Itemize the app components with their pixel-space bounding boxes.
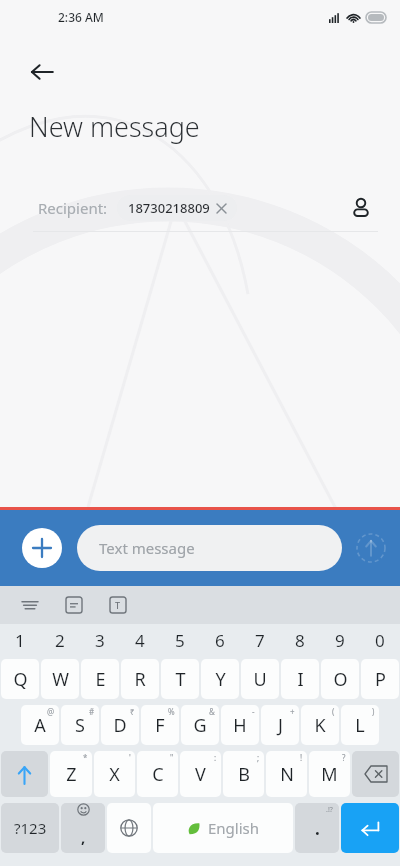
staticText: L bbox=[355, 713, 365, 738]
staticText: ) bbox=[372, 706, 375, 717]
button[interactable]: English bbox=[153, 803, 293, 853]
button[interactable]: T bbox=[161, 659, 199, 699]
button[interactable]: O bbox=[321, 659, 359, 699]
button[interactable]: E bbox=[81, 659, 119, 699]
button[interactable]: L bbox=[341, 705, 379, 745]
staticText: ! bbox=[300, 752, 303, 763]
button[interactable]: 1 bbox=[0, 624, 40, 656]
button[interactable]: P bbox=[361, 659, 399, 699]
button[interactable]: J bbox=[261, 705, 299, 745]
button[interactable]: Enter bbox=[341, 803, 399, 853]
staticText: U bbox=[253, 667, 267, 692]
staticText: T bbox=[115, 599, 121, 611]
staticText: , bbox=[81, 827, 86, 847]
staticText: + bbox=[290, 706, 295, 717]
staticText: T bbox=[175, 667, 186, 692]
button[interactable]: 7 bbox=[240, 624, 280, 656]
staticText: .!? bbox=[326, 805, 333, 815]
staticText: S bbox=[75, 713, 85, 738]
button[interactable]: K bbox=[301, 705, 339, 745]
button[interactable]: Y bbox=[201, 659, 239, 699]
button[interactable]: Back bbox=[20, 50, 64, 94]
button[interactable]: 18730218809 bbox=[117, 195, 237, 221]
button[interactable]: 8 bbox=[280, 624, 320, 656]
button[interactable]: G bbox=[181, 705, 219, 745]
staticText: 2 bbox=[55, 629, 65, 652]
button[interactable]: N bbox=[266, 751, 307, 797]
button[interactable]: Contacts bbox=[342, 189, 380, 227]
button[interactable]: Text message bbox=[77, 525, 342, 571]
button[interactable]: Clipboard bbox=[58, 589, 90, 621]
staticText: ₹ bbox=[130, 706, 135, 717]
staticText: K bbox=[314, 713, 326, 738]
staticText: : bbox=[214, 752, 217, 763]
staticText: Text message bbox=[99, 538, 195, 558]
button[interactable]: 5 bbox=[160, 624, 200, 656]
staticText: 7 bbox=[255, 629, 265, 652]
staticText: Q bbox=[13, 667, 28, 692]
staticText: 1 bbox=[15, 629, 25, 652]
staticText: & bbox=[209, 706, 215, 717]
staticText: H bbox=[233, 713, 247, 738]
button[interactable]: 3 bbox=[80, 624, 120, 656]
staticText: Y bbox=[215, 667, 226, 692]
staticText: ; bbox=[257, 752, 260, 763]
staticText: Recipient: bbox=[38, 198, 108, 218]
staticText: # bbox=[89, 706, 95, 717]
button[interactable]: V bbox=[180, 751, 221, 797]
button[interactable]: Change language bbox=[107, 803, 151, 853]
button[interactable]: ?123 bbox=[1, 803, 59, 853]
button[interactable]: W bbox=[41, 659, 79, 699]
staticText: O bbox=[333, 667, 348, 692]
button[interactable]: Backspace bbox=[352, 751, 399, 797]
button[interactable]: I bbox=[281, 659, 319, 699]
staticText: P bbox=[375, 667, 386, 692]
staticText: * bbox=[83, 752, 88, 763]
button[interactable]: Send bbox=[342, 519, 400, 577]
staticText: @ bbox=[47, 706, 55, 717]
button[interactable]: M bbox=[309, 751, 350, 797]
button[interactable]: R bbox=[121, 659, 159, 699]
staticText: D bbox=[113, 713, 127, 738]
staticText: G bbox=[193, 713, 207, 738]
button[interactable]: U bbox=[241, 659, 279, 699]
staticText: Z bbox=[66, 762, 77, 787]
staticText: M bbox=[321, 762, 338, 787]
button[interactable]: 6 bbox=[200, 624, 240, 656]
button[interactable]: Menu bbox=[14, 589, 46, 621]
staticText: . bbox=[315, 817, 320, 840]
button[interactable]: 2 bbox=[40, 624, 80, 656]
staticText: - bbox=[252, 706, 255, 717]
button[interactable]: F bbox=[141, 705, 179, 745]
staticText: " bbox=[170, 752, 174, 763]
staticText: 3 bbox=[95, 629, 105, 652]
button[interactable]: Text format bbox=[102, 589, 134, 621]
staticText: W bbox=[52, 667, 69, 692]
button[interactable]: Emoji bbox=[61, 803, 105, 853]
staticText: V bbox=[195, 762, 206, 787]
button[interactable]: A bbox=[21, 705, 59, 745]
staticText: 8 bbox=[295, 629, 305, 652]
staticText: New message bbox=[29, 108, 200, 145]
staticText: ' bbox=[129, 752, 131, 763]
button[interactable]: 4 bbox=[120, 624, 160, 656]
button[interactable]: Z bbox=[50, 751, 92, 797]
button[interactable]: B bbox=[223, 751, 264, 797]
staticText: 4 bbox=[135, 629, 145, 652]
staticText: J bbox=[278, 713, 283, 738]
button[interactable]: X bbox=[94, 751, 135, 797]
button[interactable]: 9 bbox=[320, 624, 360, 656]
button[interactable]: . bbox=[295, 803, 339, 853]
button[interactable]: Q bbox=[1, 659, 39, 699]
button[interactable]: H bbox=[221, 705, 259, 745]
button[interactable]: C bbox=[137, 751, 178, 797]
button[interactable]: Add attachment bbox=[22, 528, 62, 568]
button[interactable]: D bbox=[101, 705, 139, 745]
staticText: 9 bbox=[335, 629, 345, 652]
button[interactable]: Shift bbox=[1, 751, 48, 797]
staticText: A bbox=[34, 713, 46, 738]
button[interactable]: S bbox=[61, 705, 99, 745]
staticText: ? bbox=[342, 752, 346, 763]
button[interactable]: 0 bbox=[360, 624, 400, 656]
staticText: % bbox=[168, 706, 175, 717]
